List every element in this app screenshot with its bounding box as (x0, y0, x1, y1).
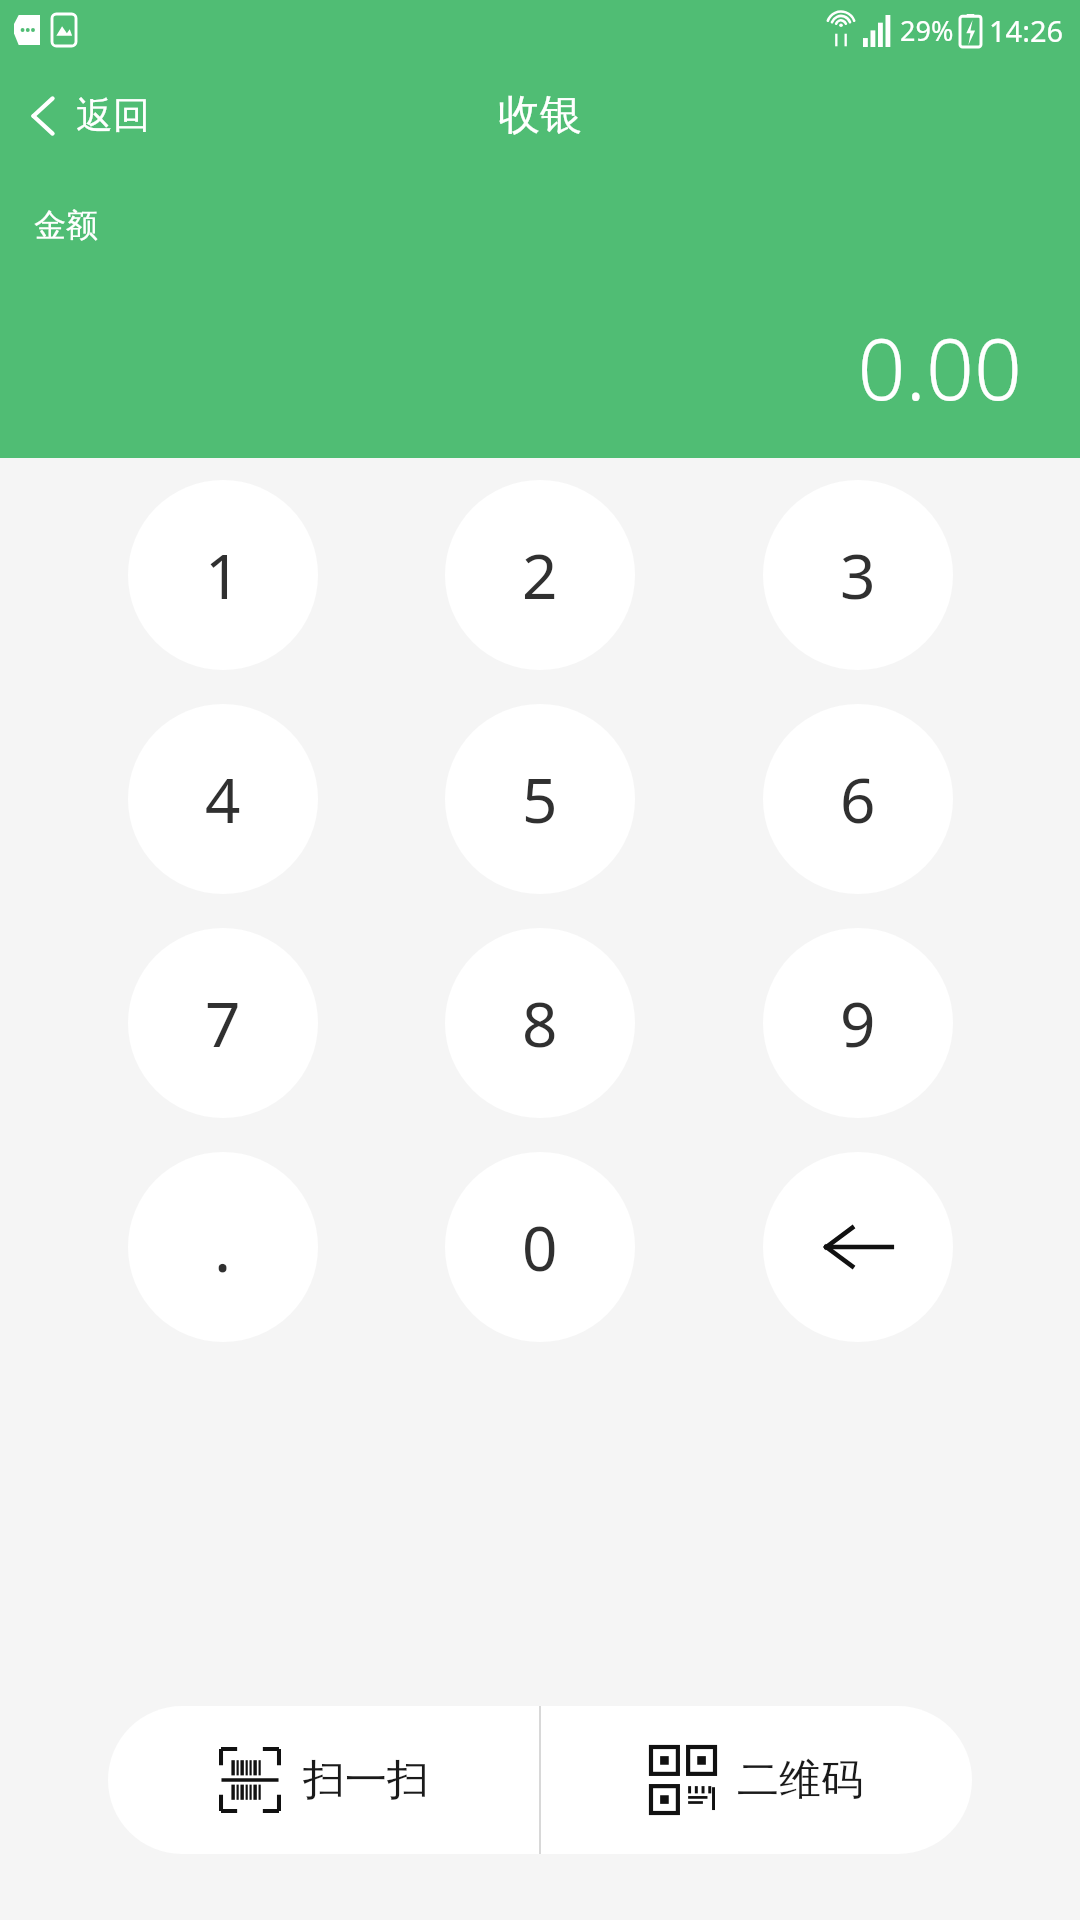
staticText: 8 (522, 981, 558, 1065)
button[interactable]: 1 (128, 480, 318, 670)
staticText: 0 (522, 1205, 558, 1289)
staticText: 收银 (498, 89, 582, 142)
staticText: 7 (205, 981, 241, 1065)
button[interactable]: 返回 (0, 78, 174, 153)
staticText: 4 (205, 757, 241, 841)
staticText: 金额 (34, 205, 98, 245)
staticText: 3 (840, 533, 876, 617)
staticText: 0.00 (857, 310, 1022, 424)
staticText: 29% (900, 12, 954, 49)
button[interactable]: 0 (445, 1152, 635, 1342)
staticText: 返回 (76, 92, 150, 139)
button[interactable]: 4 (128, 704, 318, 894)
button[interactable]: 5 (445, 704, 635, 894)
staticText: . (214, 1204, 232, 1291)
button[interactable]: 7 (128, 928, 318, 1118)
button[interactable]: 二维码 (541, 1706, 972, 1854)
staticText: 2 (522, 533, 558, 617)
button[interactable]: 9 (763, 928, 953, 1118)
button[interactable]: 扫一扫 (108, 1706, 539, 1854)
staticText: 二维码 (737, 1754, 863, 1807)
button[interactable]: 6 (763, 704, 953, 894)
staticText: 6 (840, 757, 876, 841)
staticText: 14:26 (989, 11, 1064, 50)
button[interactable]: Backspace (763, 1152, 953, 1342)
staticText: 扫一扫 (303, 1754, 429, 1807)
staticText: 5 (522, 757, 558, 841)
button[interactable]: 3 (763, 480, 953, 670)
button[interactable]: 2 (445, 480, 635, 670)
staticText: 1 (205, 533, 241, 617)
button[interactable]: 8 (445, 928, 635, 1118)
staticText: 9 (840, 981, 876, 1065)
button[interactable]: . (128, 1152, 318, 1342)
